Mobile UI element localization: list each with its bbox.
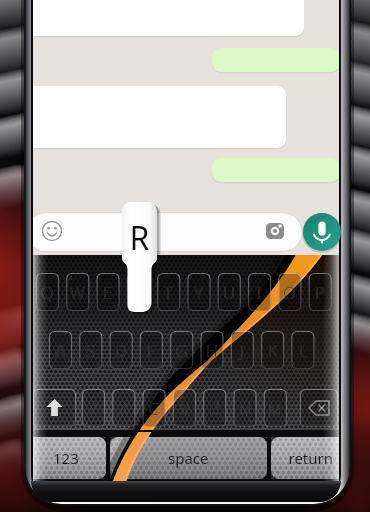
button[interactable]: Keyboard theme preview (0, 0, 370, 512)
